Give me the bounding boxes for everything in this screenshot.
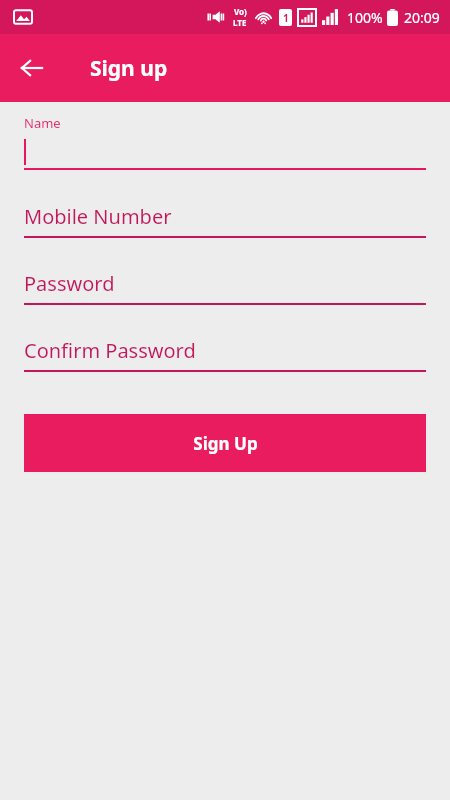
staticText: Vo) (234, 6, 247, 17)
staticText: LTE (233, 17, 247, 28)
button[interactable]: Back (12, 48, 52, 88)
button[interactable]: Confirm Password (24, 337, 426, 372)
button[interactable]: Mobile Number (24, 203, 426, 238)
button[interactable]: Name (24, 110, 426, 170)
button[interactable]: Password (24, 270, 426, 305)
staticText: Name (24, 114, 61, 132)
staticText: Sign up (90, 54, 168, 83)
button[interactable]: Sign Up (24, 414, 426, 472)
staticText: Password (24, 270, 115, 297)
staticText: 100% (347, 8, 383, 27)
staticText: 20:09 (404, 8, 440, 27)
staticText: Confirm Password (24, 337, 196, 364)
staticText: Mobile Number (24, 203, 172, 230)
staticText: Sign Up (193, 432, 258, 455)
staticText: 1 (283, 11, 289, 25)
